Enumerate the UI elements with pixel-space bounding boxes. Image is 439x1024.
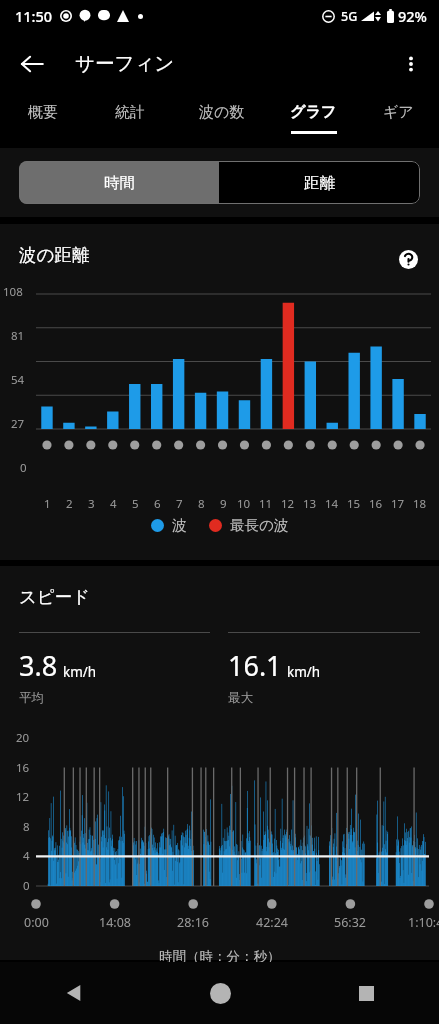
staticText: 92% [398, 6, 427, 26]
staticText: 13 [303, 496, 317, 512]
staticText: 11:50 [15, 6, 53, 26]
staticText: 時間（時：分：秒） [159, 948, 281, 965]
staticText: 81 [11, 328, 25, 344]
staticText: 6 [154, 496, 161, 512]
staticText: 18 [413, 496, 427, 512]
staticText: 56:32 [334, 914, 366, 931]
button[interactable]: 統計 [86, 95, 173, 142]
staticText: 波の数 [199, 103, 245, 122]
staticText: 10 [237, 496, 251, 512]
staticText: 波 [172, 516, 187, 534]
staticText: 統計 [115, 103, 145, 122]
staticText: 12 [281, 496, 295, 512]
button[interactable]: 概要 [0, 95, 86, 142]
staticText: スピード [19, 586, 91, 608]
staticText: 16.1 [228, 647, 282, 684]
staticText: 20 [16, 730, 30, 746]
staticText: グラフ [290, 103, 337, 122]
button[interactable]: Recents [293, 962, 439, 1024]
staticText: 1 [44, 496, 51, 512]
staticText: 時間 [104, 173, 135, 193]
button[interactable]: More options [389, 42, 433, 86]
staticText: 距離 [304, 173, 335, 193]
staticText: ギア [383, 103, 414, 122]
staticText: 28:16 [177, 914, 209, 931]
staticText: 4 [23, 848, 30, 864]
staticText: 5 [132, 496, 139, 512]
staticText: 2 [66, 496, 73, 512]
staticText: 最長の波 [230, 516, 289, 534]
button[interactable]: 波の数 [173, 95, 270, 142]
staticText: 3.8 [19, 647, 58, 684]
staticText: 16 [16, 760, 30, 776]
staticText: 17 [391, 496, 405, 512]
staticText: 9 [220, 496, 227, 512]
staticText: 8 [23, 819, 30, 835]
staticText: 16 [369, 496, 383, 512]
staticText: 4 [110, 496, 117, 512]
staticText: 平均 [19, 690, 44, 706]
button[interactable]: グラフ [270, 95, 357, 142]
staticText: 0:00 [24, 914, 49, 931]
staticText: 3 [88, 496, 95, 512]
staticText: 42:24 [256, 914, 288, 931]
staticText: 14 [325, 496, 339, 512]
staticText: 14:08 [99, 914, 131, 931]
staticText: 54 [11, 372, 25, 388]
staticText: 0 [20, 460, 27, 476]
staticText: 7 [176, 496, 183, 512]
staticText: 概要 [28, 103, 58, 122]
staticText: 15 [347, 496, 361, 512]
button[interactable]: Back [0, 962, 147, 1024]
button[interactable]: 距離 [219, 161, 420, 204]
staticText: 108 [3, 284, 23, 300]
button[interactable]: Help [391, 242, 425, 276]
staticText: km/h [287, 663, 321, 681]
button[interactable]: ギア [357, 95, 439, 142]
staticText: 11 [259, 496, 273, 512]
button[interactable]: Home [147, 962, 293, 1024]
button[interactable]: Back [10, 42, 54, 86]
staticText: 0 [23, 878, 30, 894]
staticText: 1:10:40 [408, 914, 439, 931]
staticText: 5G [341, 8, 358, 25]
button[interactable]: 時間 [19, 161, 219, 204]
staticText: 最大 [228, 690, 253, 706]
staticText: 27 [11, 416, 25, 432]
staticText: 12 [16, 789, 30, 805]
staticText: サーフィン [75, 51, 175, 76]
staticText: 8 [198, 496, 205, 512]
staticText: 波の距離 [19, 244, 90, 266]
staticText: km/h [63, 663, 97, 681]
